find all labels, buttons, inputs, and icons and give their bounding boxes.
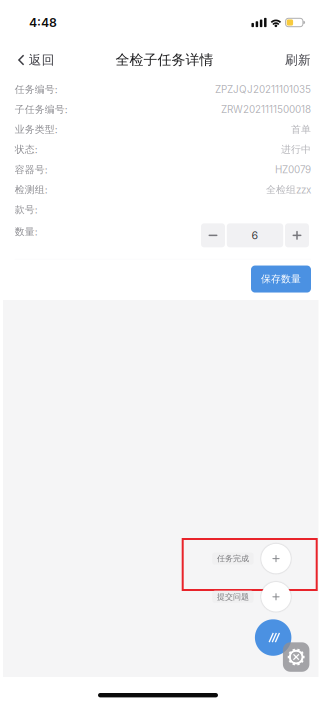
- staticText: 进行中: [281, 143, 311, 156]
- staticText: 返回: [29, 52, 55, 68]
- button[interactable]: 任务完成: [260, 543, 292, 575]
- button[interactable]: Settings: [283, 642, 309, 672]
- staticText: 子任务编号:: [15, 103, 68, 116]
- staticText: 数量:: [15, 225, 38, 238]
- button[interactable]: 返回: [0, 45, 67, 75]
- button[interactable]: 提交问题: [260, 581, 292, 613]
- staticText: HZ0079: [275, 164, 311, 176]
- button[interactable]: 增加数量: [285, 223, 309, 247]
- staticText: 保存数量: [261, 273, 301, 285]
- staticText: 首单: [291, 123, 311, 136]
- staticText: 6: [251, 229, 258, 242]
- staticText: 检测组:: [15, 183, 48, 196]
- button[interactable]: 刷新: [269, 45, 329, 75]
- button[interactable]: 保存数量: [251, 266, 311, 293]
- staticText: 任务编号:: [15, 83, 58, 96]
- button[interactable]: 减少数量: [201, 223, 225, 247]
- staticText: 全检子任务详情: [115, 51, 213, 69]
- staticText: 状态:: [15, 143, 38, 156]
- staticText: 全检组zzx: [266, 183, 311, 196]
- staticText: 刷新: [285, 52, 311, 68]
- staticText: 提交问题: [217, 592, 249, 602]
- staticText: 款号:: [15, 203, 38, 216]
- staticText: ZPZJQJ20211101035: [215, 83, 311, 95]
- staticText: 任务完成: [217, 554, 249, 564]
- staticText: 容器号:: [15, 163, 48, 176]
- staticText: ZRW2021111500018: [221, 103, 311, 115]
- staticText: 业务类型:: [15, 123, 58, 136]
- button[interactable]: 操作菜单: [255, 619, 291, 656]
- staticText: 4:48: [29, 15, 57, 30]
